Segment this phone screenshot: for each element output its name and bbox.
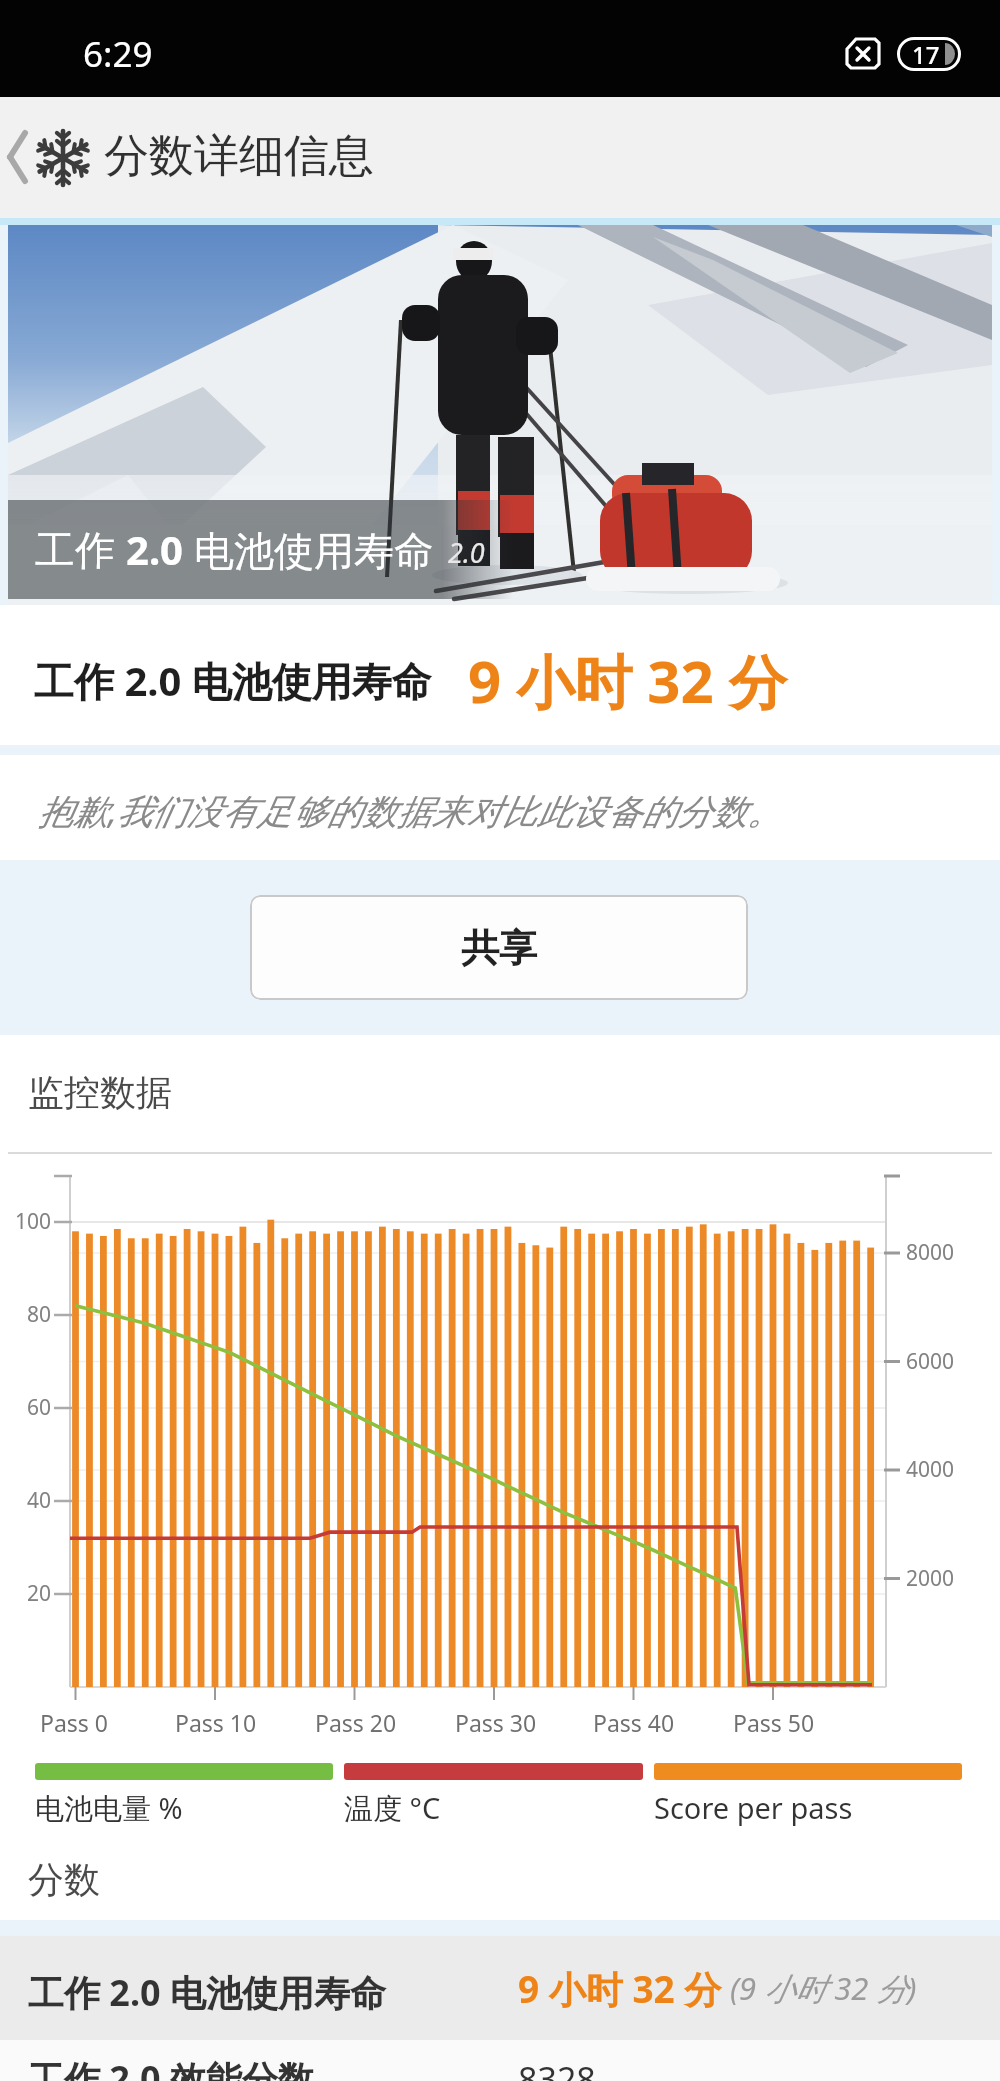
staticText: Score per pass bbox=[654, 1788, 853, 1827]
staticText: 8328 bbox=[518, 2056, 596, 2081]
staticText: 6:29 bbox=[83, 30, 153, 78]
staticText: (9 小时 32 分) bbox=[730, 1967, 917, 2009]
button[interactable] bbox=[0, 127, 34, 187]
staticText: 分数详细信息 bbox=[104, 128, 374, 185]
staticText: Pass 50 bbox=[733, 1707, 815, 1738]
staticText: 20 bbox=[27, 1579, 52, 1608]
staticText: 9 小时 32 分 bbox=[518, 1963, 722, 2014]
staticText: 100 bbox=[15, 1207, 52, 1236]
staticText: 60 bbox=[27, 1393, 52, 1422]
staticText: 工作 2.0 电池使用寿命 bbox=[34, 653, 432, 708]
staticText: 40 bbox=[27, 1486, 52, 1515]
staticText: 80 bbox=[27, 1300, 52, 1329]
staticText: 17 bbox=[912, 38, 940, 71]
staticText: 抱歉,我们没有足够的数据来对比此设备的分数。 bbox=[38, 787, 782, 835]
staticText: 温度 °C bbox=[344, 1788, 441, 1828]
staticText: 6000 bbox=[906, 1347, 955, 1376]
staticText: 2.0 bbox=[126, 522, 194, 576]
staticText: Pass 30 bbox=[455, 1707, 537, 1738]
staticText: 8000 bbox=[906, 1238, 955, 1267]
staticText: 工作 2.0 电池使用寿命 bbox=[28, 1968, 387, 2017]
staticText: 9 小时 32 分 bbox=[468, 641, 787, 720]
staticText: 电池使用寿命 bbox=[194, 526, 434, 576]
staticText: 监控数据 bbox=[28, 1070, 172, 1115]
button[interactable]: 共享 bbox=[250, 895, 748, 1000]
staticText: 分数 bbox=[28, 1857, 100, 1902]
staticText: 电池电量 % bbox=[35, 1788, 183, 1828]
staticText: 共享 bbox=[461, 924, 537, 972]
staticText: 工作 bbox=[35, 521, 126, 576]
button[interactable]: 工作 2.0 效能分数 bbox=[0, 2040, 1000, 2081]
staticText: Pass 10 bbox=[175, 1707, 257, 1738]
staticText: Pass 0 bbox=[40, 1707, 108, 1738]
staticText: 4000 bbox=[906, 1455, 955, 1484]
staticText: 2000 bbox=[906, 1564, 955, 1593]
staticText: Pass 20 bbox=[315, 1707, 397, 1738]
staticText: Pass 40 bbox=[593, 1707, 675, 1738]
staticText: 工作 2.0 效能分数 bbox=[28, 2054, 315, 2081]
button[interactable]: 工作 2.0 电池使用寿命 bbox=[0, 1936, 1000, 2040]
staticText: 2.0 bbox=[448, 534, 485, 571]
